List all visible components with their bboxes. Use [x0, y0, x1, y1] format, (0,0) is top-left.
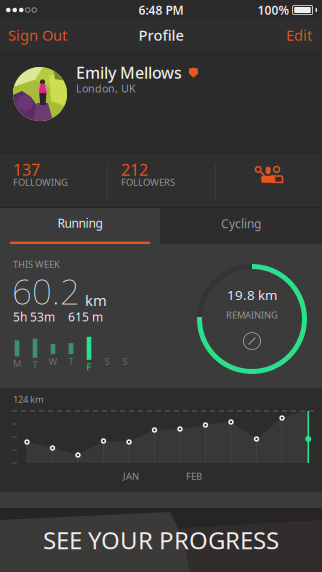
- staticText: JAN: [123, 470, 139, 482]
- button[interactable]: SEE YOUR PROGRESS: [0, 508, 322, 572]
- button[interactable]: Edit: [276, 20, 322, 50]
- staticText: 137: [13, 159, 40, 180]
- staticText: THIS WEEK: [13, 258, 60, 270]
- button[interactable]: Find friends: [216, 156, 322, 208]
- staticText: Emily Mellows: [76, 62, 182, 83]
- staticText: 615 m: [68, 309, 103, 325]
- button[interactable]: Edit goal: [241, 330, 263, 352]
- button[interactable]: Running: [0, 208, 160, 244]
- staticText: 5h 53m: [13, 309, 55, 325]
- button[interactable]: Sign Out: [0, 20, 77, 50]
- staticText: 60.2: [12, 268, 80, 314]
- staticText: W: [48, 355, 57, 367]
- staticText: SEE YOUR PROGRESS: [43, 524, 279, 556]
- staticText: 124 km: [13, 393, 44, 405]
- staticText: Sign Out: [8, 25, 67, 45]
- staticText: F: [86, 361, 91, 373]
- staticText: Profile: [138, 25, 183, 45]
- button[interactable]: Cycling: [160, 208, 322, 244]
- staticText: 19.8 km: [227, 286, 277, 304]
- staticText: FEB: [186, 470, 202, 482]
- staticText: FOLLOWERS: [121, 176, 175, 188]
- staticText: Edit: [286, 25, 312, 45]
- staticText: S: [104, 355, 109, 367]
- staticText: T: [32, 359, 37, 371]
- staticText: M: [13, 357, 21, 370]
- staticText: S: [122, 355, 127, 367]
- button[interactable]: 212: [108, 156, 215, 208]
- staticText: km: [85, 291, 107, 310]
- staticText: 100%: [258, 2, 290, 18]
- staticText: Cycling: [221, 215, 261, 231]
- staticText: 212: [121, 159, 148, 180]
- staticText: 6:48 PM: [138, 2, 183, 18]
- staticText: FOLLOWING: [13, 176, 68, 188]
- staticText: Running: [57, 215, 102, 231]
- staticText: REMAINING: [226, 309, 278, 321]
- staticText: T: [68, 355, 73, 367]
- staticText: London, UK: [76, 81, 136, 95]
- button[interactable]: 137: [0, 156, 107, 208]
